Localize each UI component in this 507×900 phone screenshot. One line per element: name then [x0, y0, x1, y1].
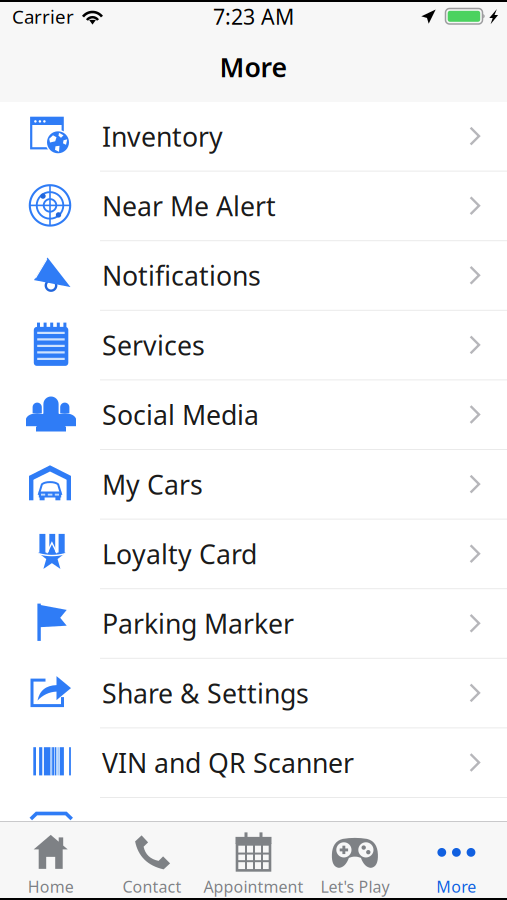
staticText: Social Media [102, 397, 259, 432]
button[interactable]: More [406, 822, 507, 900]
staticText: Notifications [102, 258, 261, 293]
staticText: Parking Marker [102, 606, 294, 641]
staticText: More [219, 49, 287, 85]
button[interactable]: Contact [101, 822, 203, 900]
button[interactable]: Appointment [203, 822, 304, 900]
staticText: Contact [123, 876, 182, 897]
staticText: VIN and QR Scanner [102, 745, 354, 780]
staticText: Near Me Alert [102, 188, 276, 224]
button[interactable]: Home [0, 822, 101, 900]
staticText: Share & Settings [102, 675, 309, 711]
staticText: Appointment [203, 876, 303, 897]
staticText: 7:23 AM [213, 2, 294, 31]
staticText: Inventory [102, 119, 223, 154]
staticText: Services [102, 327, 205, 363]
button[interactable]: Inventory [0, 102, 507, 172]
button[interactable]: Services [0, 311, 507, 380]
staticText: My Cars [102, 467, 203, 502]
button[interactable]: Loyalty Card [0, 520, 507, 589]
staticText: Home [28, 876, 74, 897]
button[interactable]: Near Me Alert [0, 172, 507, 241]
button[interactable]: Let's Play [304, 822, 406, 900]
button[interactable]: More option [0, 798, 507, 821]
button[interactable]: VIN and QR Scanner [0, 728, 507, 798]
button[interactable]: Notifications [0, 241, 507, 311]
button[interactable]: My Cars [0, 450, 507, 520]
staticText: Let's Play [320, 876, 389, 897]
staticText: More [436, 876, 476, 897]
staticText: Loyalty Card [102, 536, 257, 572]
button[interactable]: Share & Settings [0, 659, 507, 728]
staticText: Carrier [12, 4, 74, 29]
button[interactable]: Parking Marker [0, 589, 507, 659]
button[interactable]: Social Media [0, 380, 507, 450]
